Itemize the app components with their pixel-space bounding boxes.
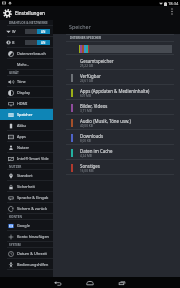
staticText: SYSTEM <box>9 243 21 247</box>
staticText: Intel® Smart Vide <box>17 156 49 161</box>
button[interactable]: Apps <box>0 131 53 142</box>
staticText: 3,71 MB <box>80 109 92 113</box>
staticText: Display <box>17 90 30 95</box>
button[interactable]: Standort <box>0 170 53 181</box>
staticText: AN <box>41 30 46 34</box>
staticText: Speicher <box>17 112 33 117</box>
staticText: Sichern & zurück <box>17 206 47 211</box>
staticText: Datenverbrauch <box>17 51 46 56</box>
button[interactable]: Recent apps <box>112 277 132 288</box>
staticText: Sprache & Eingab <box>17 195 49 200</box>
staticText: Einstellungen <box>15 10 45 16</box>
button[interactable]: B <box>0 37 53 48</box>
staticText: Bedienungshilfen <box>17 262 49 267</box>
staticText: HDMI <box>17 101 28 106</box>
button[interactable]: Display <box>0 87 53 98</box>
staticText: Akku <box>17 123 26 128</box>
staticText: Standort <box>17 173 33 178</box>
button[interactable]: Gesamtspeicher <box>53 55 180 70</box>
button[interactable]: Bedienungshilfen <box>0 259 53 270</box>
button[interactable]: Sprache & Eingab <box>0 192 53 203</box>
staticText: Nutzer <box>17 145 30 150</box>
staticText: 4,24 MB <box>80 154 92 158</box>
staticText: Daten im Cache <box>80 148 113 154</box>
button[interactable]: Töne <box>0 76 53 87</box>
staticText: Konto hinzufügen <box>17 234 49 239</box>
staticText: 18:34 <box>168 1 179 6</box>
staticText: Töne <box>17 79 26 84</box>
button[interactable]: Speicher <box>0 109 53 120</box>
button[interactable]: Akku <box>0 120 53 131</box>
staticText: B <box>12 40 15 45</box>
button[interactable]: Apps (Appdaten & Medieninhalte) <box>53 85 180 100</box>
staticText: Sicherheit <box>17 184 35 189</box>
staticText: Downloads <box>80 133 103 139</box>
staticText: Gesamtspeicher <box>80 58 114 64</box>
staticText: 24,61 GB <box>80 79 93 83</box>
staticText: 8,00 KB <box>80 139 91 143</box>
button[interactable]: HDMI <box>0 98 53 109</box>
button[interactable]: Intel® Smart Vide <box>0 153 53 164</box>
staticText: KONTEN <box>9 215 22 219</box>
button[interactable]: Google <box>0 220 53 231</box>
staticText: Apps <box>17 134 26 139</box>
staticText: 607 MB <box>80 94 91 98</box>
button[interactable]: Nutzer <box>0 142 53 153</box>
staticText: Sonstiges <box>80 163 100 169</box>
button[interactable]: W <box>0 26 53 37</box>
button[interactable]: Verfügbar <box>53 70 180 85</box>
staticText: Audio (Musik, Töne usw.) <box>80 118 131 124</box>
button[interactable]: Downloads <box>53 130 180 145</box>
staticText: NUTZER <box>9 165 22 169</box>
button[interactable]: Daten im Cache <box>53 145 180 160</box>
staticText: Datum & Uhrzeit <box>17 251 47 256</box>
button[interactable]: More options <box>167 7 176 16</box>
button[interactable]: Datum & Uhrzeit <box>0 248 53 259</box>
staticText: GERÄT <box>9 71 19 75</box>
staticText: INTERNER SPEICHER <box>70 36 102 40</box>
staticText: Verfügbar <box>80 73 101 79</box>
button[interactable]: Bilder, Videos <box>53 100 180 115</box>
button[interactable]: Datenverbrauch <box>0 48 53 59</box>
staticText: AN <box>41 41 46 45</box>
button[interactable]: Konto hinzufügen <box>0 231 53 242</box>
button[interactable]: Sicherheit <box>0 181 53 192</box>
staticText: 25,22 GB <box>80 64 93 68</box>
button[interactable]: Back <box>48 277 68 288</box>
staticText: W <box>12 29 16 34</box>
staticText: 40,00 KB <box>80 124 93 128</box>
staticText: Bilder, Videos <box>80 103 108 109</box>
staticText: Mehr... <box>17 62 29 67</box>
button[interactable]: Sichern & zurück <box>0 203 53 214</box>
staticText: Apps (Appdaten & Medieninhalte) <box>80 88 150 94</box>
staticText: 16,00 MB <box>80 169 94 173</box>
staticText: Google <box>17 223 30 228</box>
button[interactable]: Audio (Musik, Töne usw.) <box>53 115 180 130</box>
button[interactable]: Mehr... <box>0 59 53 70</box>
button[interactable]: Sonstiges <box>53 160 180 175</box>
staticText: DRAHTLOS & NETZWERKE <box>9 21 48 25</box>
button[interactable]: Home <box>80 277 100 288</box>
staticText: Speicher <box>69 23 91 30</box>
